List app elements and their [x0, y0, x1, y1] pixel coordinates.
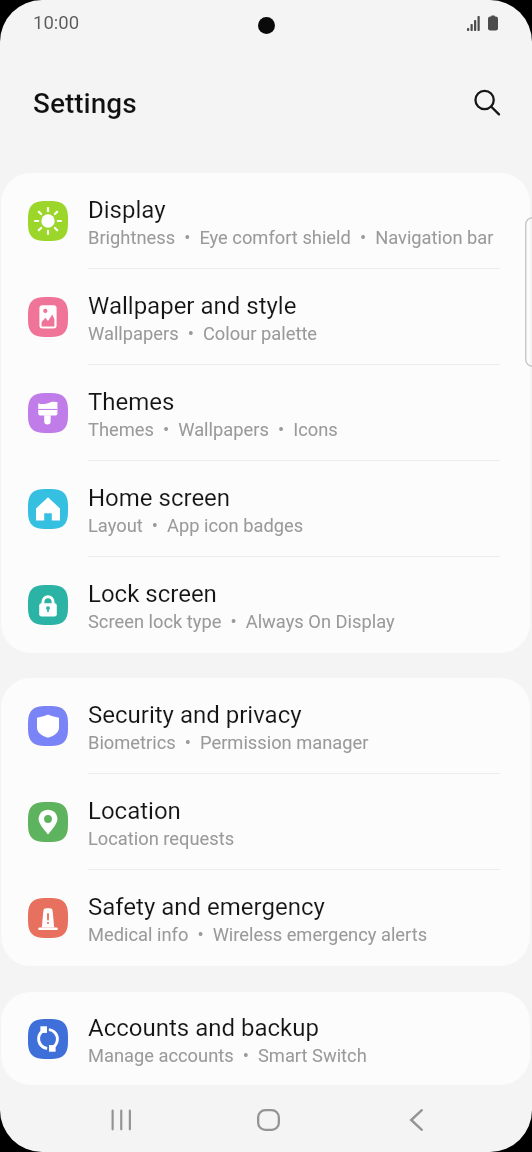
button[interactable]: Wallpaper and style [1, 269, 530, 365]
button[interactable]: Location [1, 774, 530, 870]
staticText: Display [88, 196, 166, 224]
staticText: Screen lock type • Always On Display [88, 611, 395, 632]
staticText: Security and privacy [88, 701, 302, 729]
staticText: Biometrics • Permission manager [88, 732, 369, 753]
button[interactable]: Back [379, 1094, 454, 1146]
staticText: Accounts and backup [88, 1014, 319, 1042]
button[interactable]: Accounts and backup [1, 992, 530, 1085]
button[interactable]: Display [1, 173, 530, 269]
button[interactable]: Home screen [1, 461, 530, 557]
staticText: Wallpapers • Colour palette [88, 323, 318, 344]
button[interactable]: Search [461, 77, 513, 129]
staticText: Layout • App icon badges [88, 515, 304, 536]
staticText: Themes • Wallpapers • Icons [88, 419, 338, 440]
staticText: Location [88, 797, 181, 825]
staticText: Safety and emergency [88, 893, 325, 921]
button[interactable]: Themes [1, 365, 530, 461]
staticText: Wallpaper and style [88, 292, 297, 320]
button[interactable]: Recents [82, 1094, 157, 1146]
staticText: Home screen [88, 484, 231, 512]
staticText: Settings [33, 87, 137, 120]
button[interactable]: Home [231, 1094, 306, 1146]
button[interactable]: Lock screen [1, 557, 530, 653]
staticText: 10:00 [33, 12, 80, 34]
staticText: Location requests [88, 828, 235, 849]
staticText: Themes [88, 388, 175, 416]
staticText: Brightness • Eye comfort shield • Naviga… [88, 227, 494, 248]
button[interactable]: Security and privacy [1, 678, 530, 774]
staticText: Manage accounts • Smart Switch [88, 1045, 367, 1066]
staticText: Lock screen [88, 580, 217, 608]
button[interactable]: Safety and emergency [1, 870, 530, 966]
staticText: Medical info • Wireless emergency alerts [88, 924, 428, 945]
